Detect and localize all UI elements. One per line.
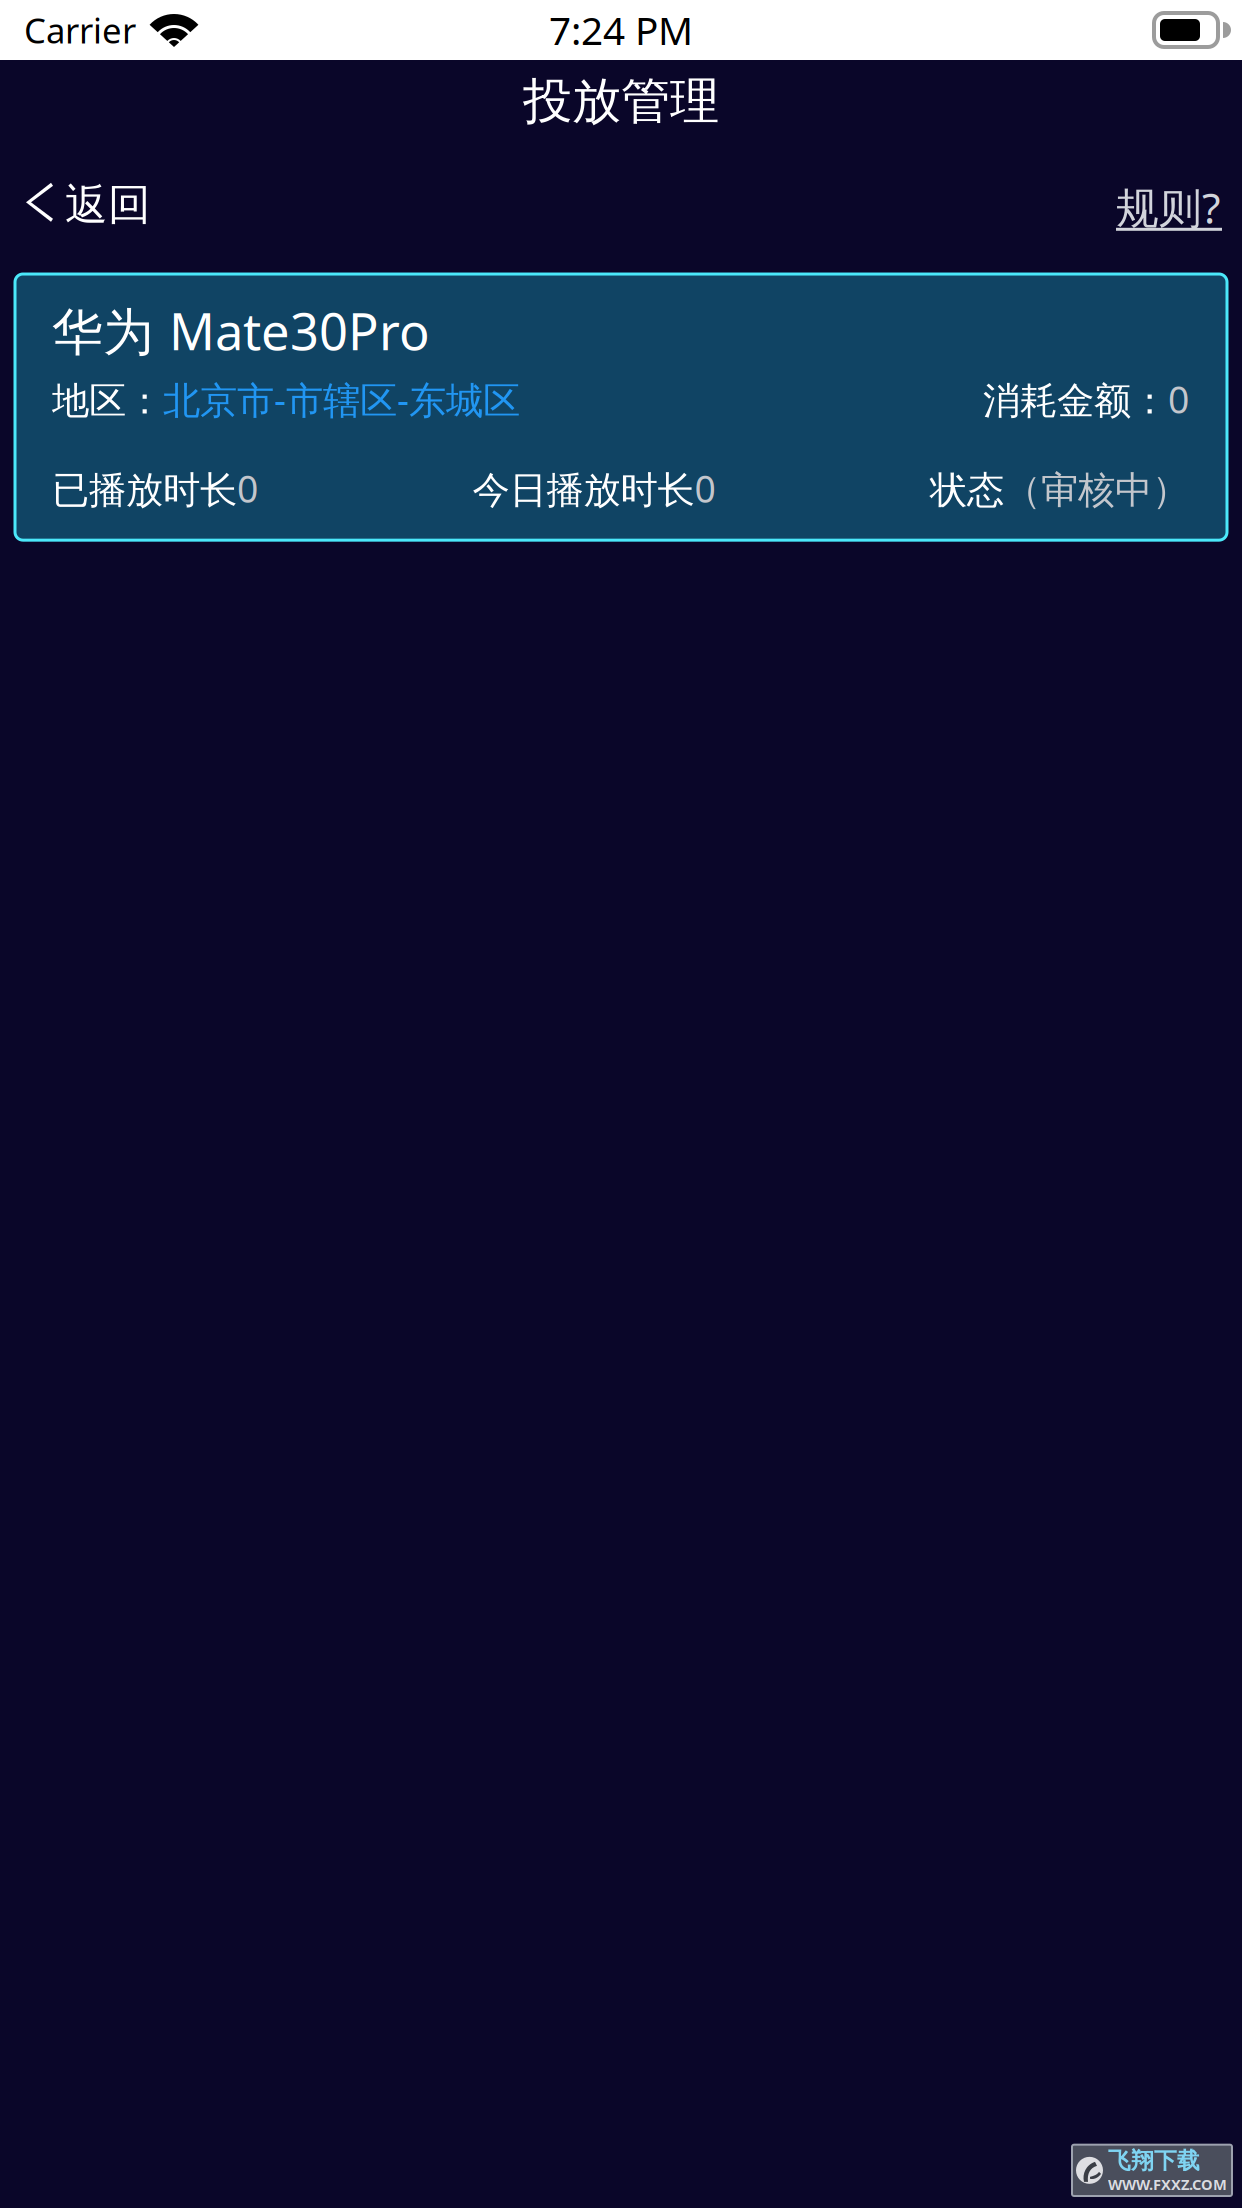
staticText: 7:24 PM bbox=[549, 4, 693, 56]
staticText: 返回 bbox=[65, 179, 151, 231]
staticText: 地区： bbox=[52, 378, 163, 424]
staticText: 规则? bbox=[1116, 179, 1221, 235]
button[interactable]: 华为 Mate30Pro bbox=[15, 274, 1227, 540]
staticText: Carrier bbox=[24, 7, 136, 53]
button[interactable]: 规则? bbox=[1092, 177, 1242, 233]
staticText: 消耗金额： bbox=[983, 378, 1168, 424]
staticText: 今日播放时长 bbox=[472, 467, 694, 513]
staticText: 华为 Mate30Pro bbox=[52, 297, 430, 364]
staticText: 北京市-市辖区-东城区 bbox=[163, 375, 520, 424]
button[interactable]: 返回 bbox=[0, 177, 175, 233]
staticText: 0 bbox=[237, 463, 258, 513]
staticText: WWW.FXXZ.COM bbox=[1108, 2174, 1227, 2194]
staticText: 投放管理 bbox=[523, 71, 719, 132]
staticText: 飞翔下载 bbox=[1108, 2147, 1200, 2174]
staticText: 0 bbox=[1168, 374, 1189, 424]
staticText: 状态 bbox=[930, 467, 1004, 513]
staticText: 0 bbox=[694, 463, 715, 513]
staticText: 已播放时长 bbox=[52, 467, 237, 513]
staticText: （审核中） bbox=[1004, 467, 1189, 513]
